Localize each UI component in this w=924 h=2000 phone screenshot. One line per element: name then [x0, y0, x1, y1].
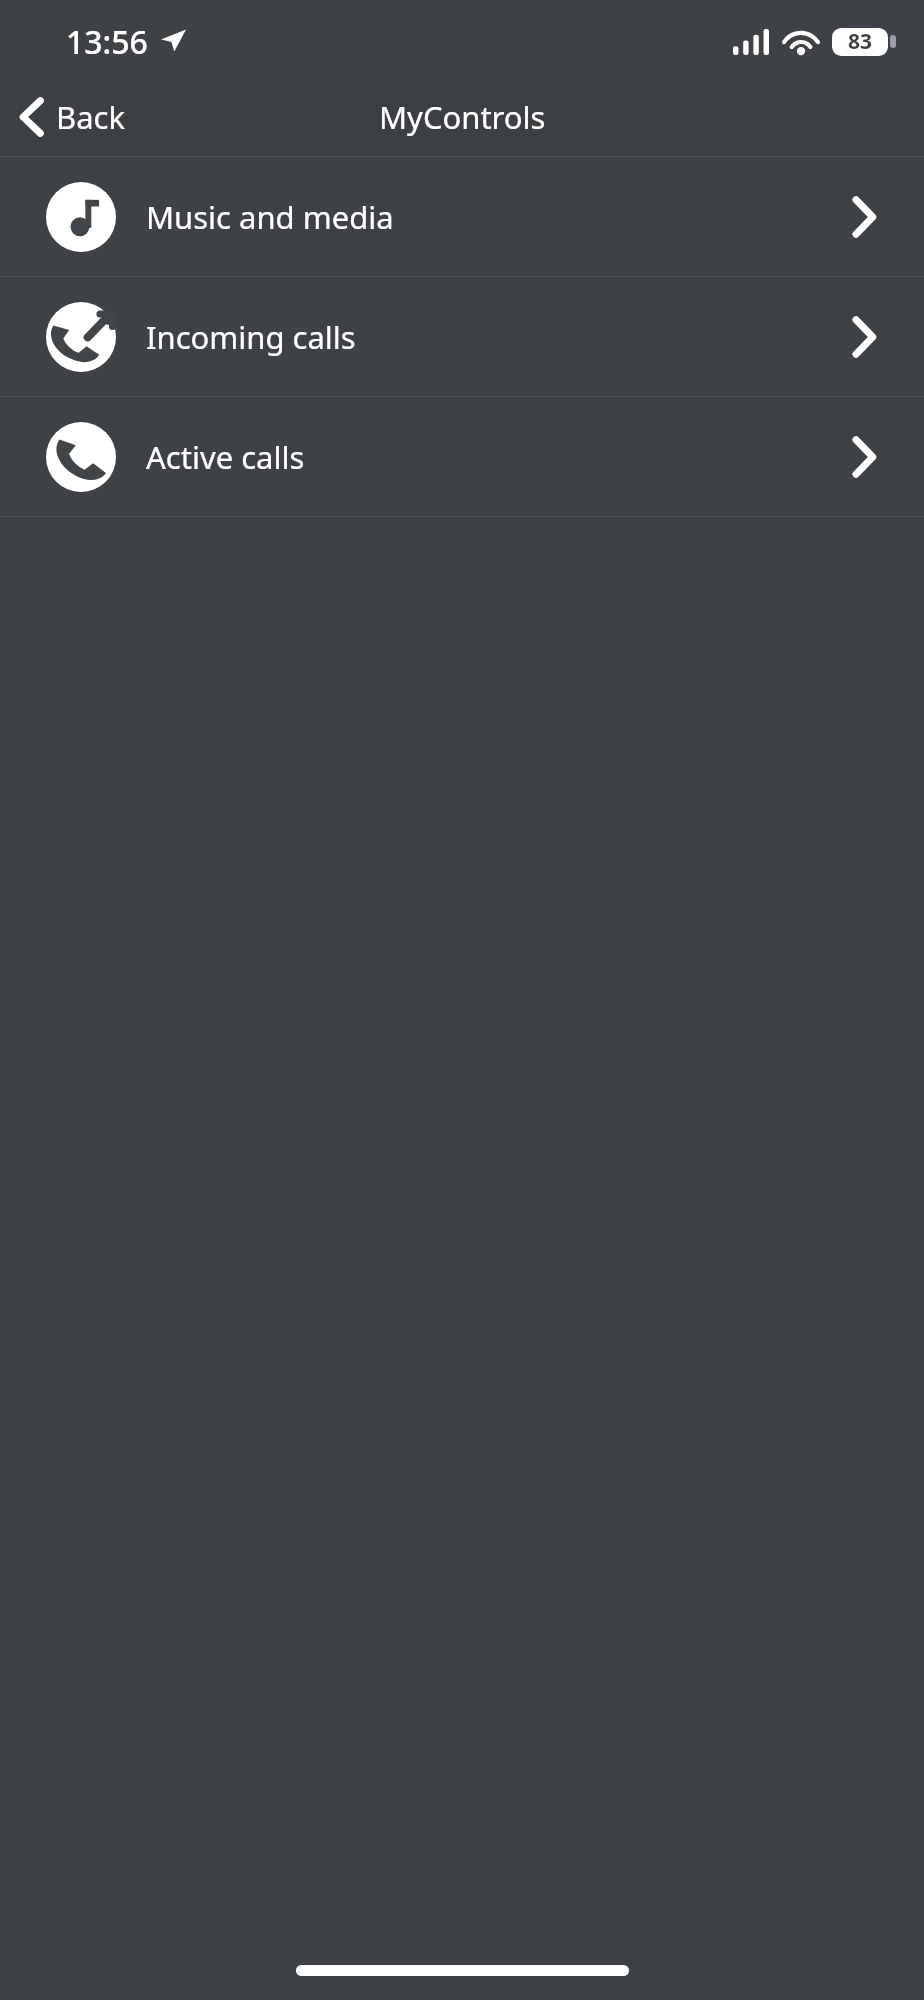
staticText: 83 [848, 27, 873, 56]
staticText: Music and media [146, 196, 853, 238]
button[interactable]: Music and media [0, 157, 924, 276]
staticText: Back [56, 96, 125, 138]
button[interactable]: Active calls [0, 397, 924, 516]
staticText: MyControls [379, 96, 546, 138]
button[interactable]: Back [0, 78, 147, 156]
staticText: 13:56 [66, 20, 148, 64]
button[interactable]: Incoming calls [0, 277, 924, 396]
staticText: Active calls [146, 436, 853, 478]
staticText: Incoming calls [146, 316, 853, 358]
